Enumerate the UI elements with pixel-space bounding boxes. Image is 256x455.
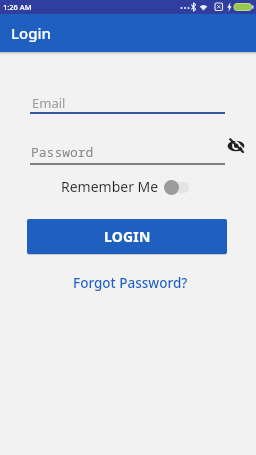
staticText: Email	[32, 94, 66, 112]
staticText: LOGIN	[104, 227, 151, 246]
button[interactable]: Forgot Password?	[73, 274, 188, 292]
button[interactable]	[227, 137, 245, 155]
staticText: Remember Me	[61, 177, 159, 196]
button[interactable]	[160, 175, 193, 197]
button[interactable]: Email	[30, 90, 225, 114]
button[interactable]: LOGIN	[27, 219, 227, 254]
staticText: Login	[11, 23, 51, 43]
staticText: 1:26 AM	[3, 2, 32, 12]
staticText: Password	[31, 143, 94, 161]
button[interactable]: Password	[30, 142, 225, 165]
